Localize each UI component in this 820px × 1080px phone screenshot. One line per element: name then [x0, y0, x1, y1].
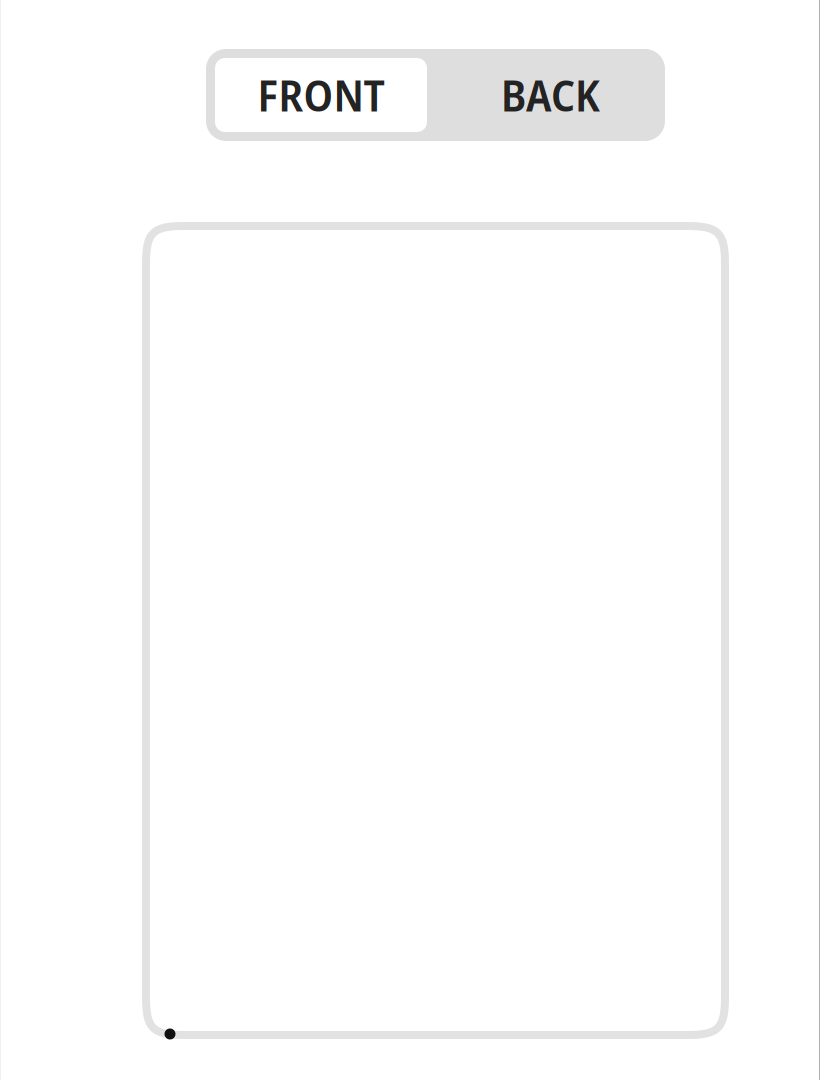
- button[interactable]: FRONT: [215, 58, 427, 132]
- staticText: BACK: [501, 66, 600, 124]
- button[interactable]: Anchor handle: [164, 1028, 175, 1039]
- button[interactable]: BACK: [427, 58, 656, 132]
- staticText: FRONT: [257, 66, 384, 124]
- button[interactable]: Card canvas: [146, 226, 725, 1035]
